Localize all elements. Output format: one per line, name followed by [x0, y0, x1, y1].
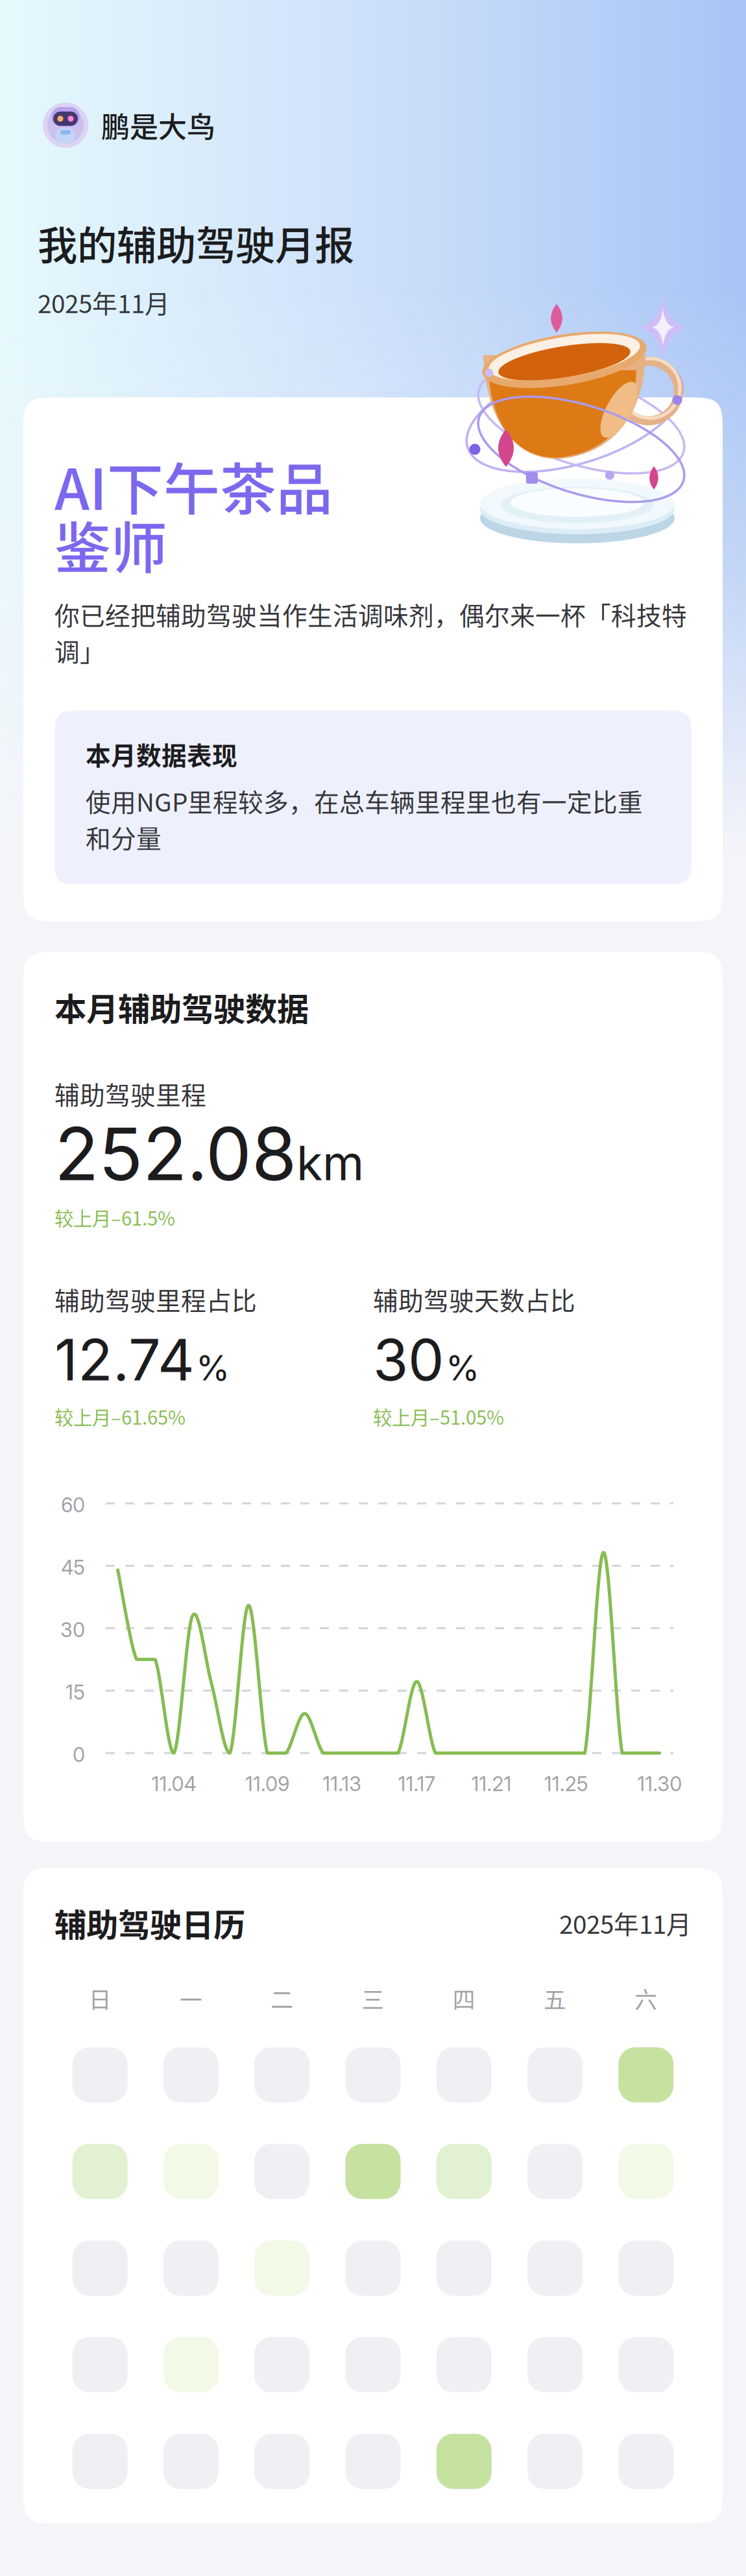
staticText: 30: [60, 1618, 85, 1642]
staticText: 鹏是大鸟: [101, 104, 215, 146]
staticText: 11.30: [637, 1772, 682, 1796]
staticText: 11.13: [323, 1772, 361, 1796]
staticText: 60: [61, 1493, 85, 1517]
staticText: 45: [61, 1555, 85, 1579]
staticText: 11.17: [398, 1772, 436, 1796]
staticText: 11.09: [245, 1772, 289, 1796]
staticText: 五: [544, 1982, 566, 2015]
staticText: 252.08: [54, 1110, 296, 1198]
staticText: 2025年11月: [38, 284, 170, 320]
button[interactable]: 鹏是大鸟: [0, 102, 215, 148]
staticText: 使用NGP里程较多，在总车辆里程里也有一定比重和分量: [86, 783, 643, 855]
staticText: 11.21: [471, 1772, 512, 1796]
staticText: km: [296, 1134, 364, 1192]
staticText: 本月辅助驾驶数据: [54, 984, 309, 1030]
staticText: 一: [180, 1982, 202, 2015]
staticText: 2025年11月: [559, 1905, 692, 1941]
staticText: 12.74: [54, 1325, 195, 1394]
staticText: 你已经把辅助驾驶当作生活调味剂，偶尔来一杯「科技特调」: [54, 596, 687, 669]
staticText: 日: [89, 1982, 111, 2015]
staticText: 辅助驾驶里程: [54, 1075, 206, 1112]
staticText: 较上月–61.65%: [54, 1403, 186, 1430]
staticText: 六: [635, 1982, 657, 2015]
staticText: %: [446, 1347, 479, 1389]
staticText: 本月数据表现: [86, 736, 237, 772]
staticText: 11.04: [151, 1772, 196, 1796]
staticText: %: [196, 1347, 230, 1389]
staticText: 15: [66, 1680, 85, 1704]
staticText: 较上月–51.05%: [373, 1403, 504, 1430]
staticText: 11.25: [544, 1772, 588, 1796]
staticText: 我的辅助驾驶月报: [38, 214, 354, 272]
staticText: 辅助驾驶日历: [54, 1900, 245, 1946]
staticText: 三: [362, 1982, 384, 2015]
staticText: 四: [453, 1982, 475, 2015]
staticText: 0: [73, 1743, 85, 1767]
staticText: 辅助驾驶里程占比: [54, 1281, 257, 1317]
staticText: 较上月–61.5%: [54, 1203, 175, 1231]
staticText: 辅助驾驶天数占比: [373, 1281, 575, 1317]
staticText: AI下午茶品 鉴师: [54, 445, 333, 585]
staticText: 30: [373, 1325, 444, 1394]
staticText: 二: [271, 1982, 293, 2015]
